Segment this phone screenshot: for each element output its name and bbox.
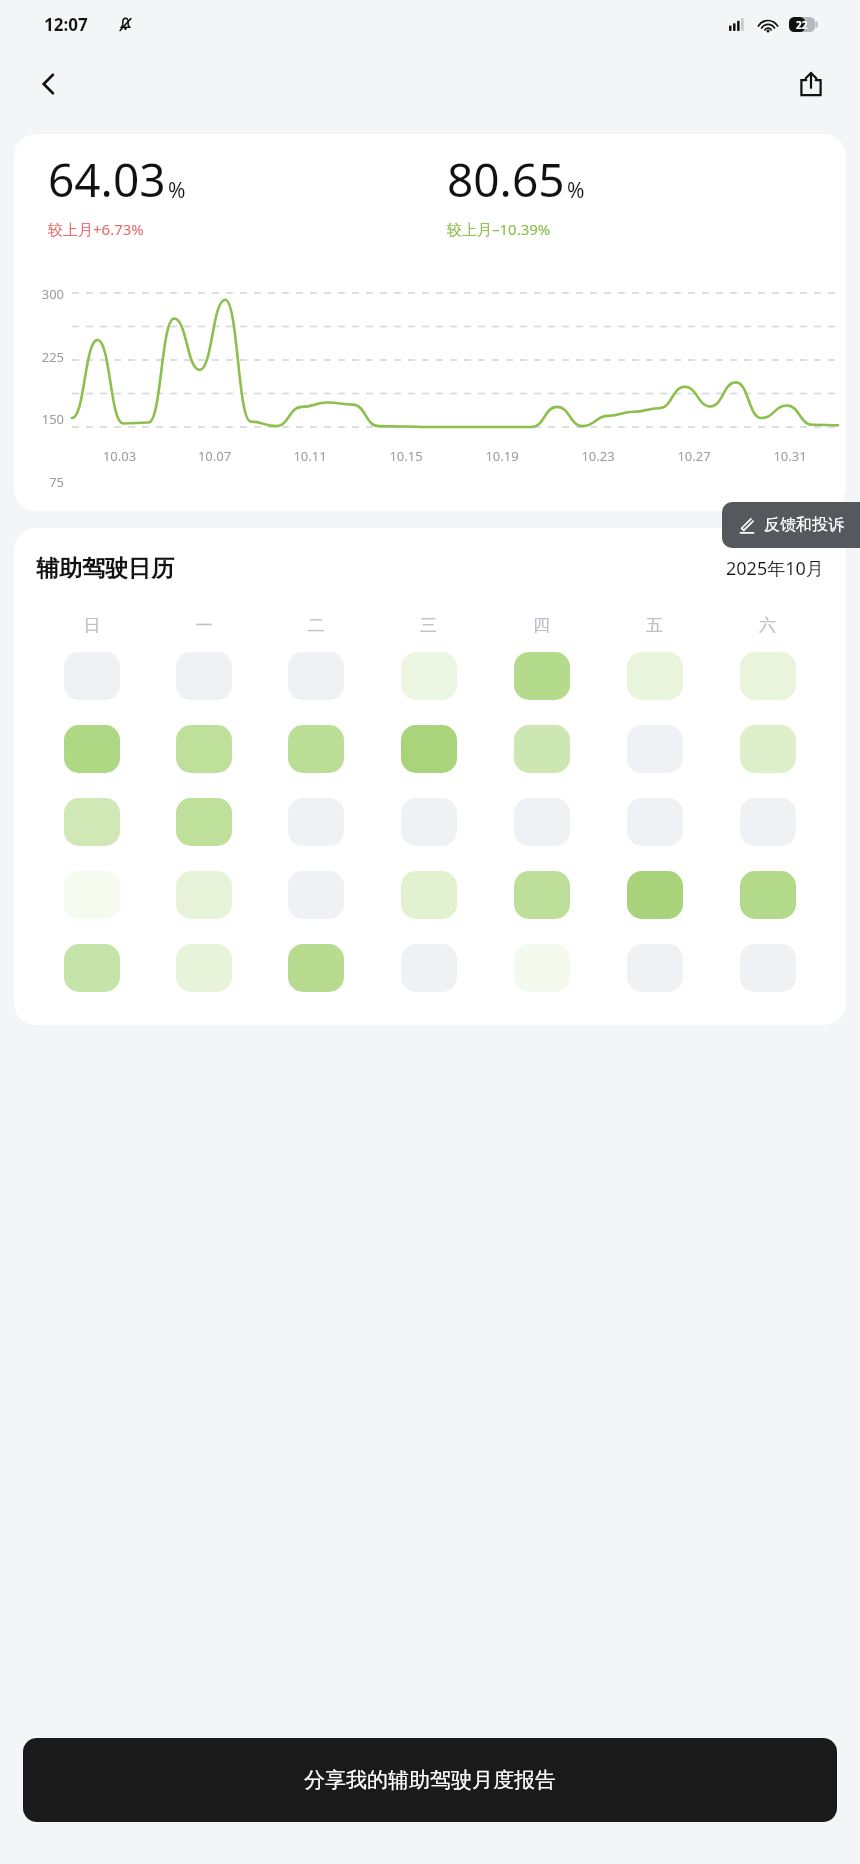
button[interactable]: Share — [788, 61, 834, 107]
button[interactable] — [401, 652, 457, 700]
staticText: % — [567, 176, 585, 205]
button[interactable] — [627, 725, 683, 773]
staticText: 10.27 — [646, 447, 742, 465]
button[interactable] — [401, 725, 457, 773]
button[interactable] — [401, 871, 457, 919]
button[interactable] — [64, 944, 120, 992]
staticText: 225 — [14, 348, 64, 366]
staticText: 22 — [796, 18, 808, 32]
button[interactable] — [401, 944, 457, 992]
button[interactable] — [288, 725, 344, 773]
button[interactable] — [627, 798, 683, 846]
staticText: 150 — [14, 410, 64, 428]
button[interactable] — [627, 871, 683, 919]
staticText: 分享我的辅助驾驶月度报告 — [304, 1767, 556, 1793]
button[interactable] — [64, 798, 120, 846]
button[interactable] — [64, 725, 120, 773]
button[interactable] — [176, 652, 232, 700]
staticText: 64.03 — [48, 148, 166, 211]
staticText: 日 — [36, 615, 148, 636]
button[interactable] — [176, 798, 232, 846]
staticText: 10.11 — [262, 447, 358, 465]
button[interactable] — [627, 944, 683, 992]
button[interactable] — [64, 652, 120, 700]
button[interactable] — [514, 725, 570, 773]
button[interactable] — [288, 944, 344, 992]
button[interactable]: 反馈和投诉 — [722, 502, 860, 548]
button[interactable] — [401, 798, 457, 846]
button[interactable]: Back — [26, 61, 72, 107]
button[interactable] — [288, 798, 344, 846]
button[interactable] — [627, 652, 683, 700]
button[interactable]: 分享我的辅助驾驶月度报告 — [23, 1738, 837, 1822]
staticText: 2025年10月 — [726, 556, 824, 581]
staticText: 较上月–10.39% — [447, 219, 551, 239]
button[interactable] — [176, 871, 232, 919]
staticText: 三 — [372, 615, 485, 636]
button[interactable] — [514, 871, 570, 919]
button[interactable] — [64, 871, 120, 919]
staticText: 较上月+6.73% — [48, 219, 144, 239]
button[interactable] — [176, 725, 232, 773]
staticText: 10.15 — [358, 447, 454, 465]
staticText: 一 — [148, 615, 260, 636]
button[interactable] — [514, 944, 570, 992]
staticText: 四 — [485, 615, 598, 636]
staticText: 10.03 — [72, 447, 167, 465]
button[interactable] — [740, 871, 796, 919]
button[interactable] — [740, 944, 796, 992]
staticText: 300 — [14, 285, 64, 303]
staticText: 10.31 — [742, 447, 838, 465]
staticText: % — [168, 176, 186, 205]
button[interactable] — [740, 652, 796, 700]
button[interactable] — [176, 944, 232, 992]
button[interactable] — [740, 725, 796, 773]
staticText: 10.07 — [167, 447, 262, 465]
staticText: 六 — [711, 615, 824, 636]
staticText: 10.19 — [454, 447, 550, 465]
staticText: 反馈和投诉 — [764, 515, 844, 535]
staticText: 12:07 — [44, 13, 88, 36]
button[interactable] — [514, 652, 570, 700]
staticText: 五 — [598, 615, 711, 636]
staticText: 10.23 — [550, 447, 646, 465]
staticText: 辅助驾驶日历 — [36, 554, 174, 583]
staticText: 75 — [14, 473, 64, 491]
button[interactable] — [514, 798, 570, 846]
staticText: 80.65 — [447, 148, 565, 211]
button[interactable] — [288, 652, 344, 700]
button[interactable] — [288, 871, 344, 919]
button[interactable] — [740, 798, 796, 846]
staticText: 二 — [260, 615, 372, 636]
